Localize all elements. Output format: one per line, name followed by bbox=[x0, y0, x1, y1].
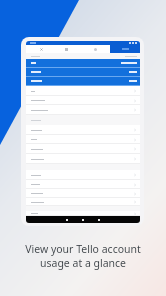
button[interactable] bbox=[26, 198, 140, 206]
button[interactable] bbox=[26, 154, 140, 164]
button[interactable] bbox=[26, 105, 140, 115]
button[interactable] bbox=[26, 86, 140, 96]
button[interactable] bbox=[26, 59, 140, 68]
button[interactable] bbox=[26, 135, 140, 144]
button[interactable] bbox=[26, 125, 140, 135]
button[interactable] bbox=[26, 180, 140, 189]
button[interactable]: Menu bbox=[110, 45, 140, 53]
button[interactable] bbox=[26, 68, 140, 77]
button[interactable] bbox=[26, 189, 140, 198]
staticText: View your Tello account usage at a glanc… bbox=[0, 242, 166, 270]
button[interactable]: Reload bbox=[94, 48, 97, 51]
button[interactable] bbox=[26, 144, 140, 154]
button[interactable] bbox=[26, 170, 140, 180]
button[interactable] bbox=[26, 211, 140, 216]
button[interactable] bbox=[26, 77, 140, 86]
button[interactable]: Close bbox=[39, 47, 44, 52]
button[interactable] bbox=[26, 96, 140, 105]
